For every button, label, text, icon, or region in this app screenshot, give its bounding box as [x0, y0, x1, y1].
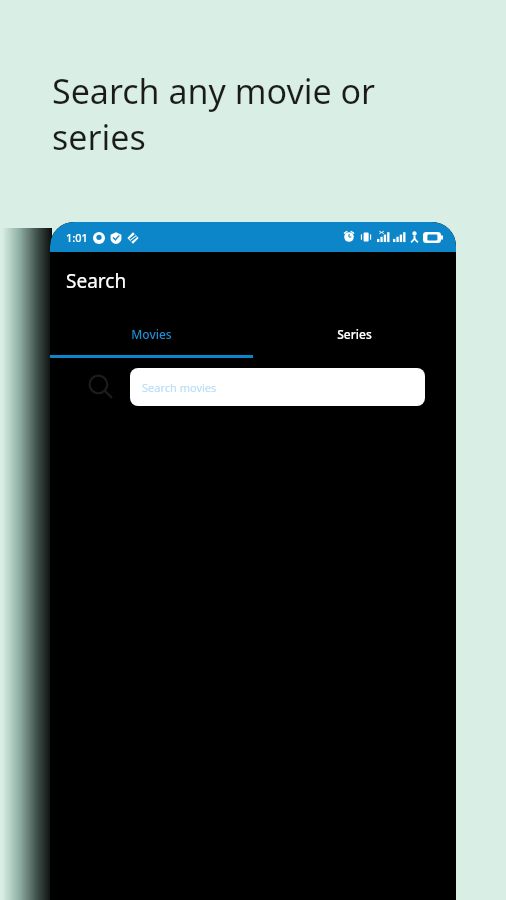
button[interactable]: Movies [50, 310, 253, 358]
staticText: Search [66, 268, 127, 294]
staticText: series [52, 114, 146, 160]
staticText: Search movies [142, 380, 217, 395]
staticText: 1:01 [66, 230, 88, 245]
staticText: Series [337, 326, 372, 342]
staticText: Movies [131, 326, 172, 342]
button[interactable]: Search [83, 369, 119, 405]
button[interactable]: Series [253, 310, 456, 358]
button[interactable]: Search movies [130, 368, 425, 406]
staticText: Search any movie or [52, 68, 376, 114]
